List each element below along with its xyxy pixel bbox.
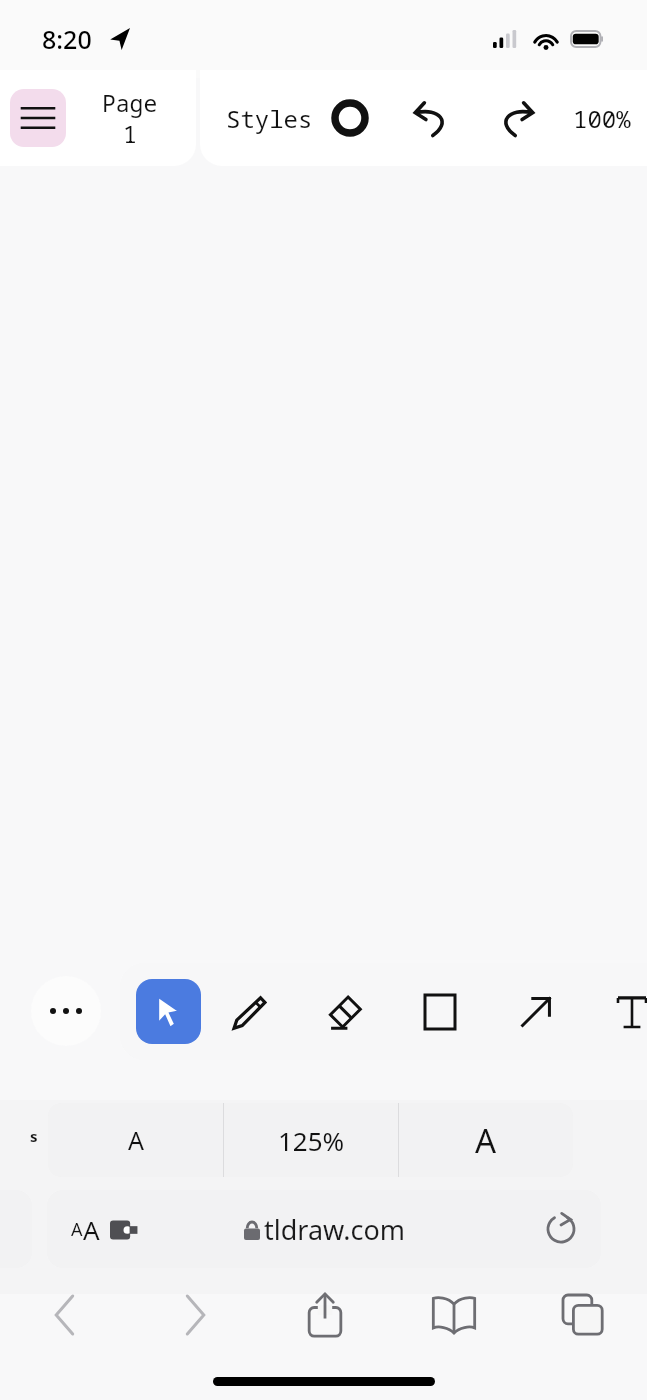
staticText: 8:20 [42, 22, 92, 56]
button[interactable]: Back [0, 1275, 130, 1355]
staticText: 1 [123, 118, 137, 149]
button[interactable]: Styles [212, 70, 369, 166]
button[interactable]: Undo [403, 89, 461, 147]
staticText: A [128, 1123, 144, 1157]
staticText: 125% [278, 1123, 345, 1158]
staticText: Page [102, 87, 158, 118]
button[interactable]: Eraser tool [296, 963, 392, 1060]
button[interactable]: Share [260, 1275, 389, 1355]
button[interactable]: Rectangle tool [392, 963, 488, 1060]
button[interactable]: More options [31, 976, 101, 1046]
button[interactable]: Redo [487, 89, 545, 147]
button[interactable]: 100% [573, 70, 631, 166]
button[interactable]: 125% [224, 1103, 398, 1177]
button[interactable]: Arrow tool [488, 963, 584, 1060]
staticText: s [30, 1126, 38, 1146]
button[interactable]: Text tool [584, 963, 647, 1060]
button[interactable]: Bookmarks [389, 1275, 518, 1355]
button[interactable]: Forward [130, 1275, 260, 1355]
staticText: 100% [573, 102, 631, 135]
staticText: Styles [226, 102, 313, 135]
staticText: tldraw.com [264, 1211, 405, 1248]
staticText: A [83, 1212, 100, 1247]
button[interactable]: A [48, 1103, 223, 1177]
button[interactable]: Menu [10, 89, 66, 147]
button[interactable]: Page [102, 87, 158, 149]
button[interactable]: Select tool [136, 979, 201, 1044]
button[interactable]: A [47, 1190, 601, 1268]
button[interactable]: Draw tool [201, 963, 296, 1060]
button[interactable]: Reload [539, 1207, 583, 1251]
button[interactable]: Tabs [518, 1275, 647, 1355]
staticText: A [71, 1217, 83, 1242]
button[interactable]: A [399, 1103, 573, 1177]
staticText: A [475, 1118, 497, 1163]
